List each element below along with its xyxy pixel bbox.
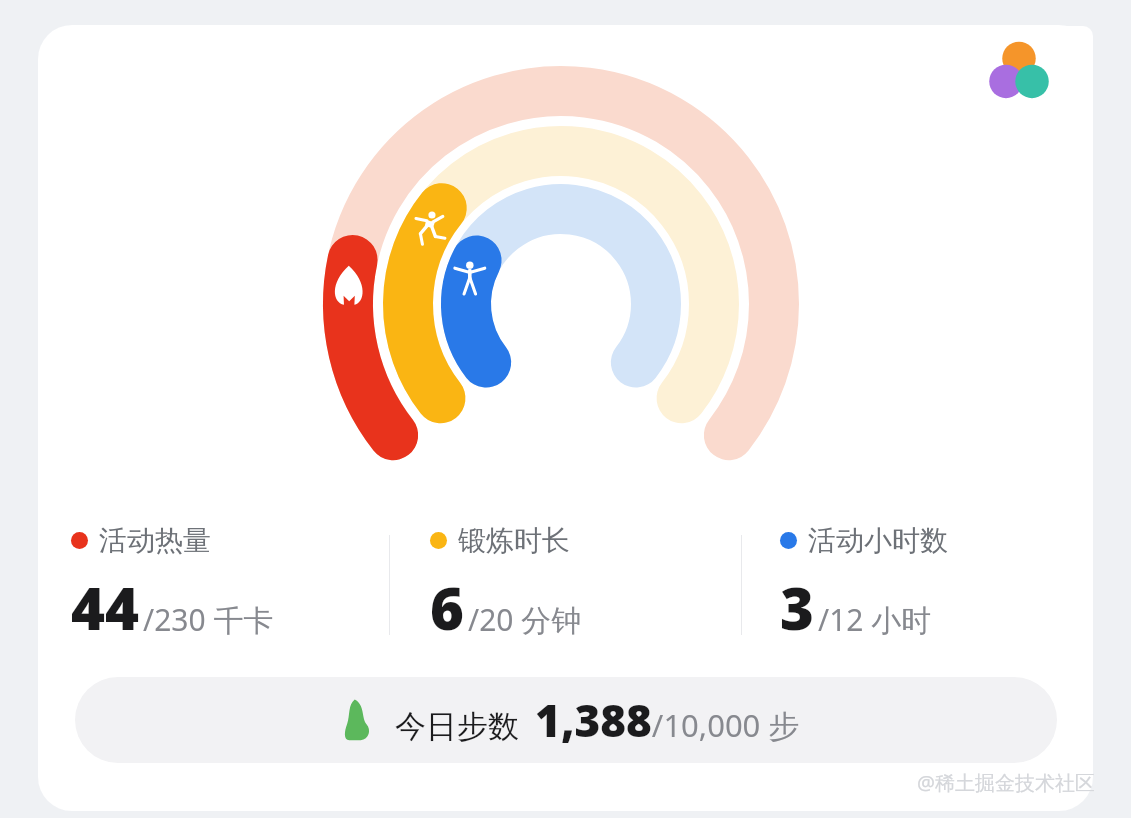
staticText: 锻炼时长 [458, 523, 570, 558]
staticText: /230 千卡 [143, 599, 274, 640]
staticText: /20 分钟 [468, 599, 582, 640]
staticText: @稀土掘金技术社区 [917, 769, 1095, 796]
staticText: 44 [71, 568, 139, 647]
staticText: /12 小时 [818, 599, 932, 640]
button[interactable]: 活动小时数 [780, 523, 1093, 647]
staticText: 6 [430, 568, 464, 647]
staticText: 活动小时数 [808, 523, 948, 558]
button[interactable]: App logo [945, 26, 1093, 112]
staticText: 今日步数 1,388/10,000 步 [395, 690, 800, 750]
staticText: 活动热量 [99, 523, 211, 558]
button[interactable]: 活动热量 [71, 523, 389, 647]
button[interactable]: 今日步数 1,388/10,000 步 [75, 677, 1057, 763]
button[interactable]: 锻炼时长 [430, 523, 741, 647]
staticText: 3 [780, 568, 814, 647]
